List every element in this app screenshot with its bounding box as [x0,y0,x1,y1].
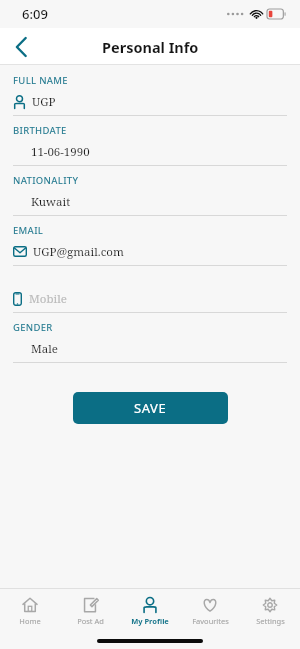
staticText: SAVE [134,399,167,417]
button[interactable]: NATIONALITY [0,174,300,224]
button[interactable]: Settings [240,589,300,633]
staticText: Favourites [192,616,229,626]
staticText: Personal Info [102,37,199,57]
staticText: Home [19,616,41,626]
staticText: BIRTHDATE [13,124,67,137]
staticText: 6:09 [22,5,48,23]
button[interactable]: FULL NAME [0,74,300,124]
staticText: Settings [256,616,285,626]
staticText: UGP@gmail.com [33,244,124,260]
staticText: Male [31,341,58,357]
staticText: My Profile [131,616,169,626]
button[interactable]: BIRTHDATE [0,124,300,174]
button[interactable]: Home [0,589,60,633]
staticText: NATIONALITY [13,174,79,187]
button[interactable]: Favourites [180,589,240,633]
button[interactable]: My Profile [120,589,180,633]
staticText: GENDER [13,321,53,334]
button[interactable]: SAVE [73,392,228,424]
staticText: Post Ad [77,616,104,626]
staticText: Mobile [29,291,67,307]
button[interactable]: Mobile [0,274,300,321]
button[interactable]: Post Ad [60,589,120,633]
staticText: UGP [32,94,56,110]
staticText: FULL NAME [13,74,68,87]
staticText: EMAIL [13,224,44,237]
button[interactable]: GENDER [0,321,300,371]
button[interactable]: Back [0,28,42,65]
button[interactable]: EMAIL [0,224,300,274]
staticText: Kuwait [31,194,71,210]
staticText: 11-06-1990 [31,144,90,160]
